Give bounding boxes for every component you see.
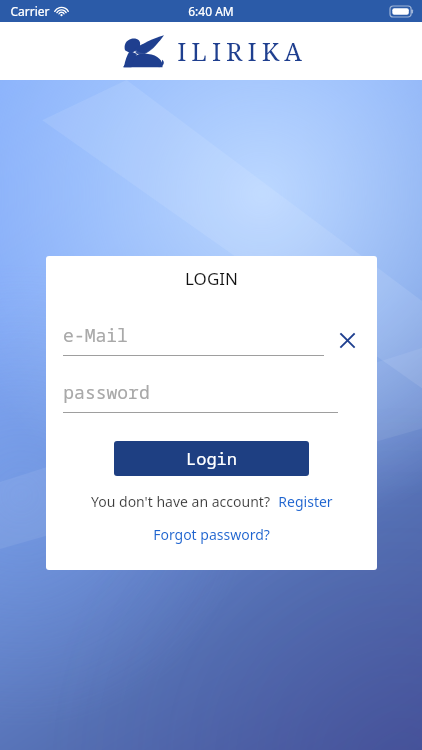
button[interactable]: Register: [278, 492, 333, 511]
staticText: Login: [186, 447, 237, 470]
button[interactable]: Login: [114, 441, 309, 476]
button[interactable]: Clear e-mail: [334, 327, 360, 353]
staticText: Register: [278, 492, 333, 511]
staticText: Carrier: [10, 3, 50, 19]
staticText: LOGIN: [185, 267, 238, 290]
staticText: 6:40 AM: [188, 3, 234, 19]
staticText: ILIRIKA: [177, 34, 307, 68]
staticText: password: [63, 380, 150, 405]
staticText: e-Mail: [63, 323, 128, 348]
staticText: You don't have an account?: [91, 492, 270, 511]
button[interactable]: Forgot password?: [153, 525, 270, 544]
staticText: Forgot password?: [153, 525, 270, 544]
